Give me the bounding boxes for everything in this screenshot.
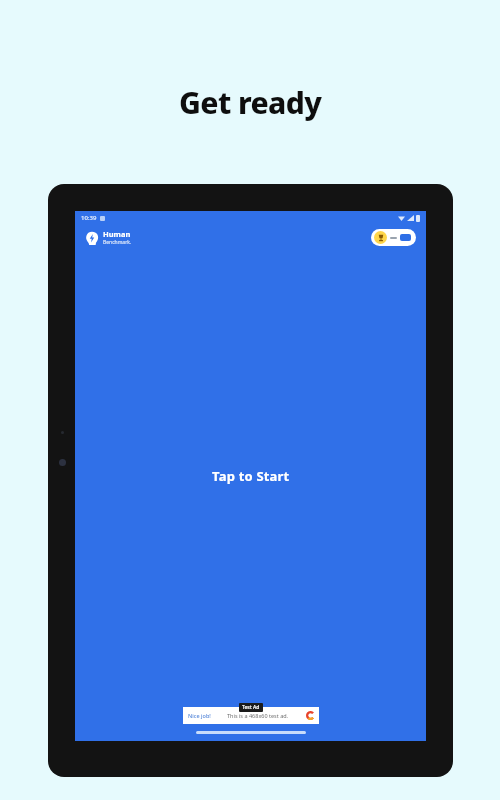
staticText: Test Ad (242, 704, 260, 711)
button[interactable]: Human (85, 229, 132, 246)
staticText: Nice job! (188, 712, 211, 719)
staticText: Benchmark. (103, 239, 132, 246)
staticText: Get ready (179, 82, 322, 123)
other: AdMob (306, 711, 315, 720)
staticText: This is a 468x60 test ad. (227, 712, 289, 719)
staticText: Human (103, 229, 131, 239)
button[interactable]: Tap to Start (75, 211, 426, 741)
button[interactable]: Nice job! (183, 707, 319, 724)
staticText: Tap to Start (212, 467, 290, 485)
staticText: 10:39 (81, 214, 97, 222)
button[interactable]: Account and score (371, 229, 416, 246)
